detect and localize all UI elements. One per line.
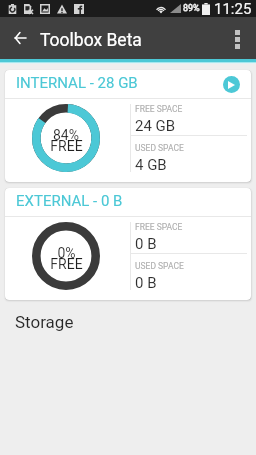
staticText: 0 B: [135, 274, 157, 292]
staticText: FREE: [50, 138, 83, 154]
staticText: USED SPACE: [135, 261, 184, 271]
staticText: FREE SPACE: [135, 222, 183, 232]
button[interactable]: EXTERNAL - 0 B: [5, 188, 251, 300]
staticText: 24 GB: [135, 117, 176, 135]
staticText: USED SPACE: [135, 143, 184, 153]
button[interactable]: More options: [219, 17, 256, 59]
staticText: 89%: [183, 3, 200, 14]
staticText: FREE SPACE: [135, 104, 183, 114]
staticText: FREE: [50, 256, 83, 272]
staticText: EXTERNAL - 0 B: [16, 192, 123, 210]
staticText: Storage: [15, 312, 74, 332]
staticText: 84%: [53, 127, 79, 143]
staticText: 0%: [57, 245, 76, 261]
staticText: 4 GB: [135, 156, 167, 174]
staticText: INTERNAL - 28 GB: [16, 74, 138, 92]
button[interactable]: INTERNAL - 28 GB: [5, 70, 251, 182]
button[interactable]: Play: [223, 76, 240, 93]
staticText: 0 B: [135, 235, 157, 253]
staticText: 11:25: [214, 0, 252, 17]
button[interactable]: Back: [0, 17, 41, 59]
staticText: Toolbox Beta: [40, 30, 142, 51]
